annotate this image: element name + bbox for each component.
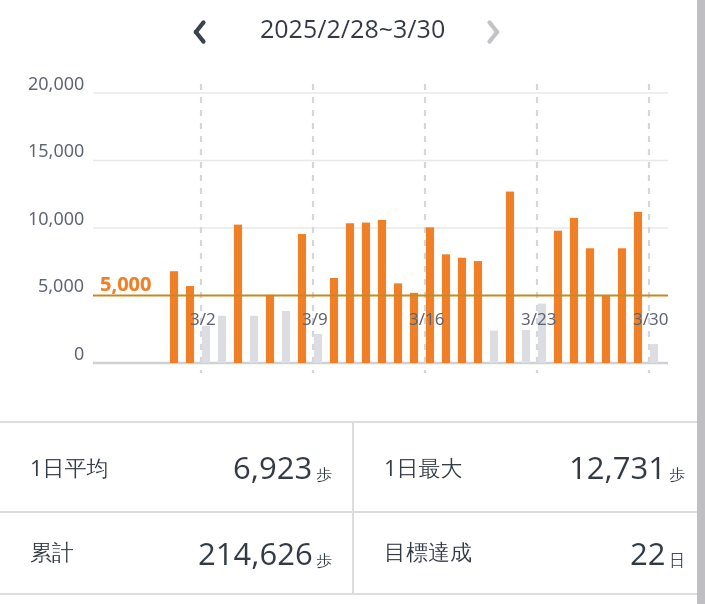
button[interactable]: Next period (471, 12, 515, 52)
staticText: 3/16 (409, 307, 445, 330)
staticText: 歩 (316, 465, 332, 485)
staticText: 10,000 (28, 206, 85, 231)
staticText: 累計 (30, 539, 74, 567)
staticText: 6,923 (233, 446, 313, 488)
staticText: 22 (630, 532, 666, 574)
staticText: 3/2 (190, 307, 216, 330)
staticText: 1日平均 (30, 452, 109, 482)
button[interactable]: Previous period (178, 12, 222, 52)
staticText: 3/9 (302, 307, 328, 330)
staticText: 1日最大 (384, 452, 463, 482)
staticText: 5,000 (38, 273, 85, 298)
staticText: 20,000 (28, 71, 85, 96)
button[interactable]: 累計 (0, 513, 352, 593)
button[interactable]: 目標達成 (354, 513, 705, 593)
staticText: 日 (669, 551, 685, 571)
staticText: 5,000 (100, 270, 152, 297)
staticText: 目標達成 (384, 539, 472, 567)
staticText: 0 (74, 341, 85, 366)
staticText: 歩 (316, 551, 332, 571)
staticText: 12,731 (569, 446, 666, 488)
staticText: 3/30 (633, 307, 669, 330)
button[interactable]: 1日最大 (354, 423, 705, 511)
staticText: 214,626 (198, 532, 313, 574)
button[interactable]: 1日平均 (0, 423, 352, 511)
staticText: 2025/2/28~3/30 (260, 11, 446, 45)
staticText: 歩 (669, 465, 685, 485)
staticText: 3/23 (521, 307, 557, 330)
staticText: 15,000 (28, 138, 85, 163)
